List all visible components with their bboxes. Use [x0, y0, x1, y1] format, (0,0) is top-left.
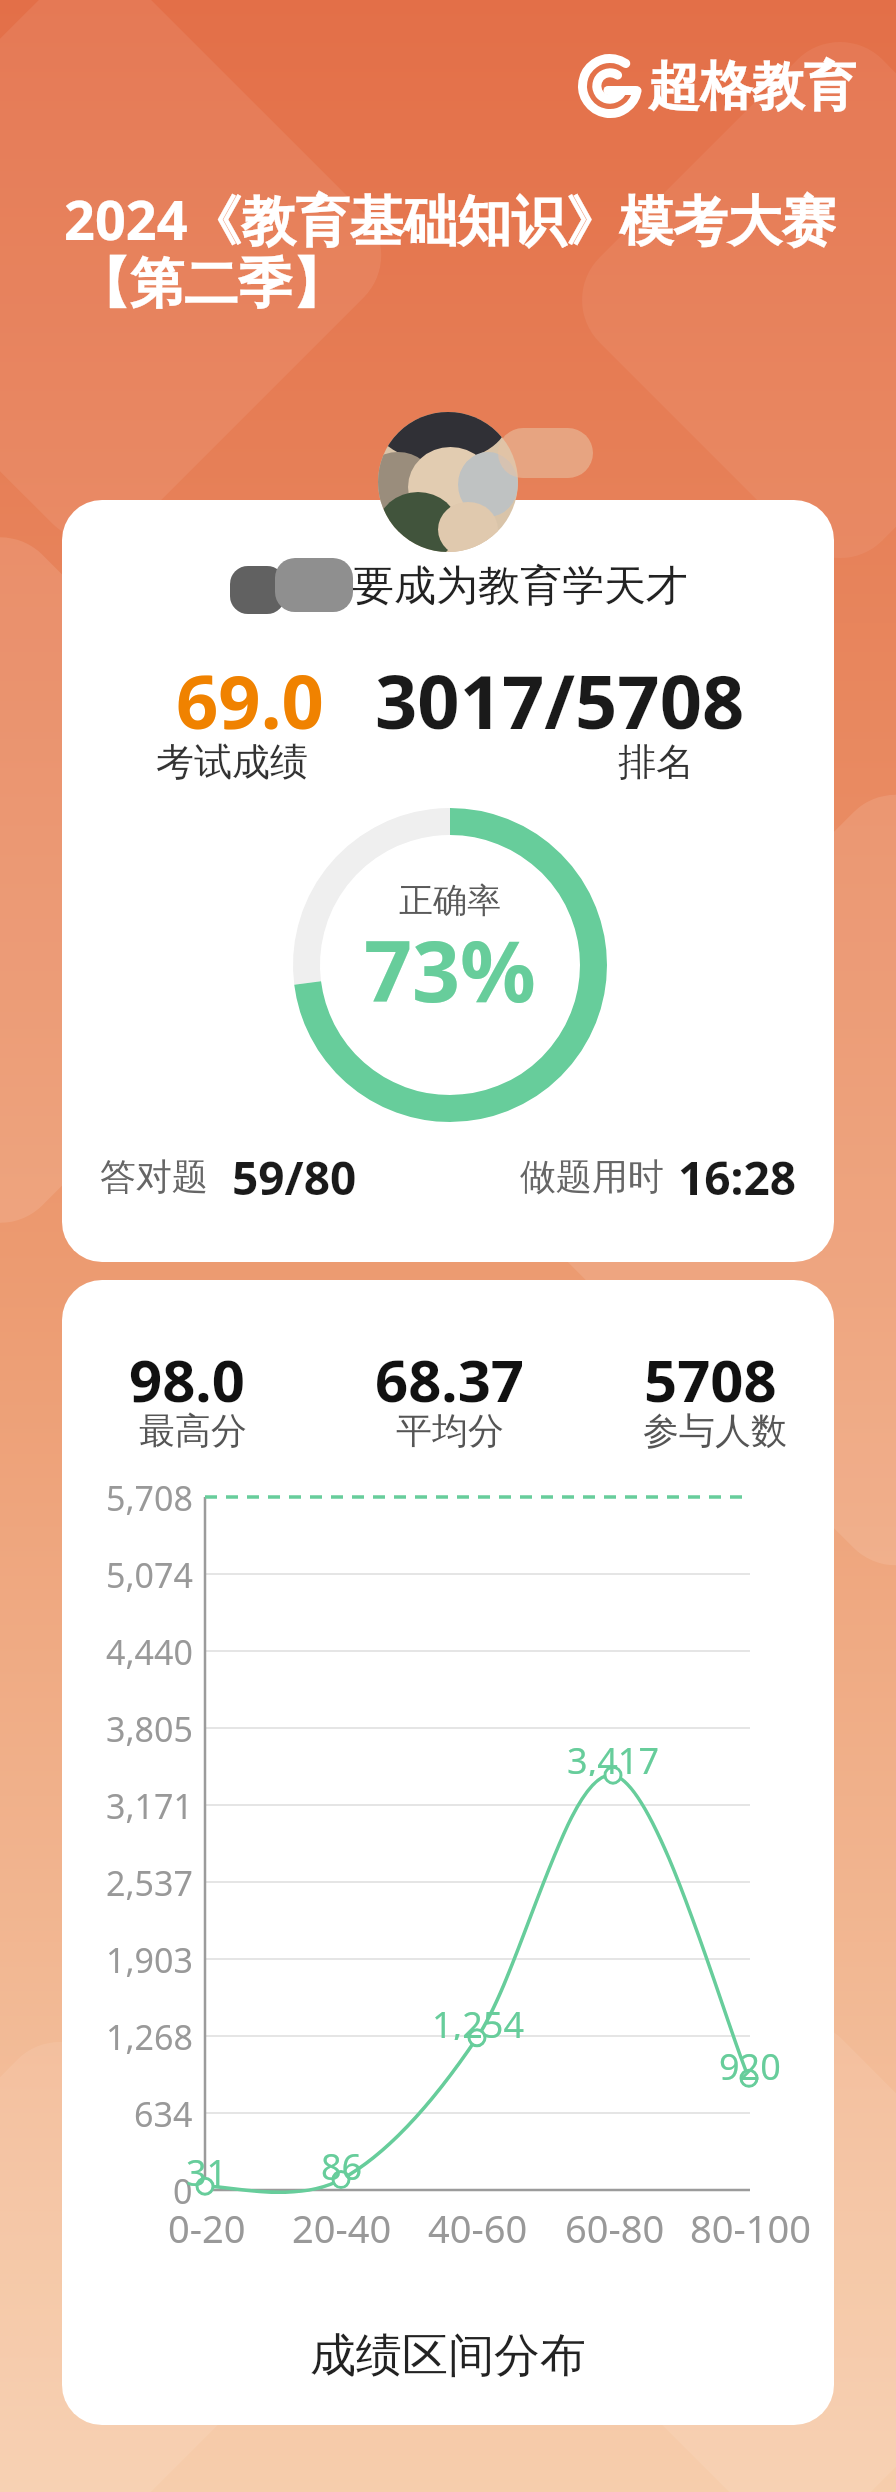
staticText: 做题用时 — [520, 1154, 664, 1199]
staticText: 0 — [173, 2168, 193, 2212]
staticText: 3017/5708 — [375, 650, 745, 734]
staticText: 16:28 — [678, 1146, 797, 1204]
staticText: 60-80 — [565, 2202, 665, 2246]
staticText: 68.37 — [375, 1340, 525, 1406]
staticText: 634 — [134, 2091, 193, 2135]
button[interactable] — [62, 500, 834, 1262]
staticText: 5708 — [644, 1340, 777, 1406]
staticText: 0-20 — [168, 2202, 246, 2246]
staticText: 3,171 — [106, 1783, 193, 1827]
staticText: 80-100 — [690, 2202, 811, 2246]
staticText: 4,440 — [106, 1629, 193, 1673]
staticText: 答对题 — [100, 1154, 208, 1199]
staticText: 40-60 — [428, 2202, 528, 2246]
staticText: 920 — [719, 2042, 781, 2082]
staticText: 69.0 — [176, 650, 324, 734]
staticText: 最高分 — [139, 1408, 247, 1450]
staticText: 3,805 — [106, 1706, 193, 1750]
staticText: 3,417 — [567, 1736, 660, 1776]
button[interactable] — [62, 1280, 834, 2425]
staticText: 参与人数 — [643, 1408, 787, 1450]
staticText: 考试成绩 — [156, 738, 308, 782]
staticText: 31 — [186, 2148, 228, 2188]
staticText: 1,903 — [106, 1937, 193, 1981]
staticText: 1,254 — [432, 2000, 525, 2040]
staticText: 86 — [321, 2142, 363, 2182]
staticText: 20-40 — [292, 2202, 392, 2246]
staticText: 2,537 — [106, 1860, 193, 1904]
staticText: 5,708 — [106, 1475, 193, 1519]
staticText: 成绩区间分布 — [310, 2327, 586, 2385]
staticText: 【第二季】 — [76, 250, 346, 318]
staticText: 73% — [364, 912, 536, 1007]
staticText: 正确率 — [399, 879, 501, 922]
staticText: 1,268 — [106, 2014, 193, 2058]
staticText: 2024《教育基础知识》模考大赛 — [64, 182, 836, 250]
staticText: 98.0 — [129, 1340, 245, 1406]
staticText: 59/80 — [232, 1146, 357, 1204]
staticText: 5,074 — [106, 1552, 193, 1596]
staticText: 平均分 — [396, 1408, 504, 1450]
staticText: 要成为教育学天才 — [352, 560, 688, 612]
staticText: 排名 — [618, 738, 694, 782]
staticText: 超格教育 — [648, 54, 856, 118]
